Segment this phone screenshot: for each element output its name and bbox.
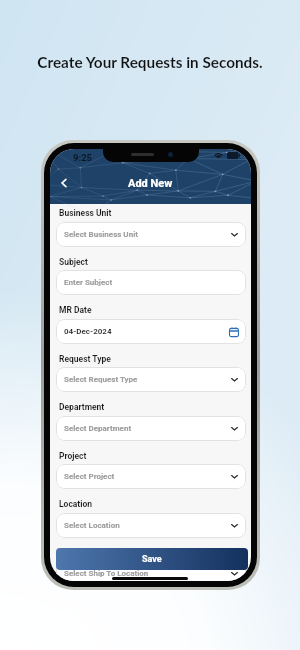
button[interactable]: Save <box>56 548 248 570</box>
staticText: Project <box>59 451 87 461</box>
staticText: Select Ship To Location <box>64 569 149 578</box>
button[interactable]: Select Ship To Location <box>56 561 246 581</box>
button[interactable]: Select Location <box>56 513 246 538</box>
staticText: MR Date <box>59 305 92 315</box>
staticText: Business Unit <box>59 208 112 218</box>
staticText: Select Department <box>64 424 132 433</box>
button[interactable]: Select Request Type <box>56 367 246 392</box>
staticText: 9:25 <box>73 152 93 163</box>
button[interactable]: Enter Subject <box>56 270 246 295</box>
button[interactable]: Select Business Unit <box>56 222 246 247</box>
staticText: Select Location <box>64 521 120 530</box>
staticText: Location <box>59 499 93 509</box>
button[interactable]: 04-Dec-2024 <box>56 319 246 344</box>
staticText: Add New <box>128 177 173 190</box>
staticText: 04-Dec-2024 <box>64 327 112 336</box>
button[interactable]: Select Department <box>56 416 246 441</box>
button[interactable]: Back <box>50 172 78 194</box>
staticText: Ship To Location <box>59 548 123 558</box>
staticText: Select Business Unit <box>64 230 138 239</box>
staticText: Request Type <box>59 354 111 364</box>
staticText: Create Your Requests in Seconds. <box>37 53 263 71</box>
staticText: Select Project <box>64 472 115 481</box>
staticText: Enter Subject <box>64 278 113 287</box>
staticText: Subject <box>59 257 88 267</box>
staticText: Save <box>142 554 162 565</box>
staticText: Department <box>59 402 105 412</box>
button[interactable]: Select Project <box>56 464 246 489</box>
staticText: Select Request Type <box>64 375 138 384</box>
